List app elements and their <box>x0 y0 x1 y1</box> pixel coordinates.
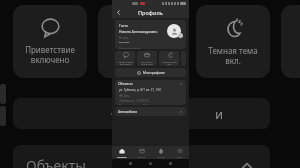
staticText: Номер телефона <box>119 47 141 49</box>
staticText: Лицевой № : 4 1282514 <box>119 99 150 103</box>
staticText: ••••••••• <box>119 41 130 45</box>
staticText: и <box>215 105 224 123</box>
button[interactable]: Изм <box>281 5 300 78</box>
button[interactable]: Гость <box>115 20 186 49</box>
staticText: Главная <box>117 155 127 158</box>
staticText: Темная тема вкл. <box>208 45 258 66</box>
staticText: Автомобили <box>118 110 138 114</box>
staticText: Без карты включено <box>141 60 153 66</box>
button[interactable]: Главная <box>112 146 132 159</box>
button[interactable]: Приветствие включено <box>13 5 87 78</box>
staticText: Объекты <box>26 156 86 168</box>
staticText: Услуги <box>157 155 165 158</box>
staticText: Никита Александрович <box>119 29 158 34</box>
staticText: Приветствие включено <box>25 44 75 65</box>
button[interactable]: Автомобили <box>115 107 186 116</box>
button[interactable]: Услуги <box>151 146 170 159</box>
staticText: Темная тема вкл. <box>162 60 177 66</box>
staticText: Мои профили <box>143 71 165 75</box>
staticText: Приветствие включено <box>118 60 133 66</box>
button[interactable]: Мои профили <box>115 68 186 77</box>
button[interactable]: Темная тема вкл. <box>196 5 270 78</box>
button[interactable]: и <box>13 98 270 129</box>
staticText: Бонусы <box>119 36 129 40</box>
staticText: Оплата <box>137 155 146 158</box>
staticText: ЖК Дом <box>119 94 130 98</box>
staticText: Площадь общая : 60.7 м² <box>119 104 152 105</box>
button[interactable]: Назад <box>114 8 123 17</box>
button[interactable]: Темная тема вкл. <box>159 51 179 66</box>
staticText: Ещё <box>177 155 182 158</box>
staticText: ул. Губкина, д. 8/1 кв. 21, 160 <box>119 88 161 92</box>
button[interactable]: Без карты включено <box>137 51 157 66</box>
button[interactable]: Оплата <box>132 146 151 159</box>
staticText: Объекты <box>118 81 133 86</box>
button[interactable]: Аватар <box>167 24 181 38</box>
button[interactable]: Объекты <box>13 145 270 168</box>
button[interactable]: Объекты <box>115 80 186 105</box>
staticText: Профиль <box>138 9 163 16</box>
button[interactable]: Приветствие включено <box>115 51 135 66</box>
staticText: Гость <box>119 23 129 28</box>
button[interactable]: Ещё <box>170 146 189 159</box>
